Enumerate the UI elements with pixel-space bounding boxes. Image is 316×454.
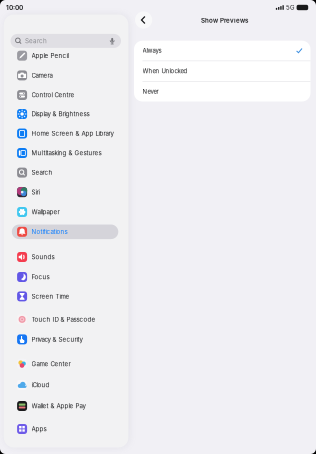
button[interactable]: Home Screen & App Library <box>12 126 118 141</box>
button[interactable]: Game Center <box>12 357 118 371</box>
staticText: Display & Brightness <box>31 110 89 118</box>
staticText: Sounds <box>31 253 54 261</box>
button[interactable]: Multitasking & Gestures <box>12 146 118 160</box>
button[interactable]: Apple Pencil <box>12 48 118 63</box>
button[interactable]: iCloud <box>12 378 118 392</box>
staticText: When Unlocked <box>142 67 187 75</box>
button[interactable]: Apps <box>12 422 118 436</box>
staticText: Multitasking & Gestures <box>31 149 101 157</box>
button[interactable]: Siri <box>12 185 118 199</box>
button[interactable]: Touch ID & Passcode <box>12 312 118 327</box>
button[interactable]: Search <box>10 34 121 48</box>
staticText: Control Centre <box>31 91 74 99</box>
button[interactable]: Camera <box>12 68 118 83</box>
staticText: Screen Time <box>31 293 69 300</box>
staticText: Show Previews <box>201 17 248 24</box>
button[interactable]: Focus <box>12 270 118 284</box>
staticText: Apps <box>31 425 46 433</box>
button[interactable]: When Unlocked <box>134 61 310 81</box>
staticText: Wallpaper <box>31 208 59 216</box>
staticText: Touch ID & Passcode <box>31 316 95 323</box>
staticText: Search <box>31 169 52 176</box>
button[interactable]: Notifications <box>12 224 118 239</box>
staticText: 5G <box>286 4 294 11</box>
staticText: Notifications <box>31 228 67 235</box>
staticText: Home Screen & App Library <box>31 130 113 137</box>
button[interactable]: Display & Brightness <box>12 107 118 121</box>
staticText: Focus <box>31 273 49 281</box>
staticText: Apple Pencil <box>31 52 68 59</box>
button[interactable]: Wallet & Apple Pay <box>12 399 118 413</box>
staticText: Siri <box>31 188 39 196</box>
staticText: iCloud <box>31 381 49 389</box>
button[interactable]: Never <box>134 82 310 101</box>
button[interactable]: Control Centre <box>12 88 118 102</box>
staticText: Search <box>25 37 47 45</box>
button[interactable]: Screen Time <box>12 289 118 304</box>
button[interactable]: Search <box>12 165 118 180</box>
staticText: Always <box>142 47 161 54</box>
button[interactable]: Always <box>134 41 310 60</box>
button[interactable]: Sounds <box>12 250 118 264</box>
staticText: Privacy & Security <box>31 336 82 343</box>
staticText: Camera <box>31 72 52 79</box>
staticText: Wallet & Apple Pay <box>31 402 85 410</box>
staticText: Game Center <box>31 360 70 368</box>
staticText: 10:00 <box>6 3 23 11</box>
button[interactable]: Back <box>135 11 152 28</box>
button[interactable]: Privacy & Security <box>12 332 118 347</box>
staticText: Never <box>142 88 158 95</box>
button[interactable]: Wallpaper <box>12 205 118 219</box>
